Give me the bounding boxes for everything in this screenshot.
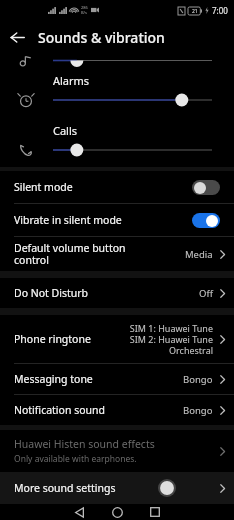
button[interactable]: More sound settings [0, 472, 234, 504]
staticText: Alarms [53, 73, 90, 88]
button[interactable]: Vibrate in silent mode [0, 204, 234, 236]
staticText: Off [199, 287, 213, 300]
button[interactable]: Silent mode [0, 171, 234, 203]
staticText: Silent mode [14, 180, 192, 194]
staticText: Default volume button control [14, 241, 185, 267]
staticText: Notification sound [14, 403, 183, 417]
button[interactable]: Default volume button control [0, 237, 234, 271]
button[interactable]: Phone ringtone [0, 315, 234, 363]
staticText: Huawei Histen sound effects [14, 437, 155, 451]
staticText: 21 [192, 8, 198, 15]
button[interactable]: Huawei Histen sound effects [0, 430, 234, 472]
staticText: Calls [53, 123, 78, 138]
button[interactable]: Messaging tone [0, 364, 234, 394]
staticText: Bongo [183, 404, 213, 417]
button[interactable]: Notification sound [0, 395, 234, 425]
button[interactable]: Do Not Disturb [0, 278, 234, 308]
button[interactable]: Alarms [0, 67, 234, 117]
staticText: Phone ringtone [14, 332, 129, 346]
button[interactable]: Recents [136, 504, 174, 520]
button[interactable]: Home [98, 504, 136, 520]
staticText: More sound settings [14, 481, 116, 495]
button[interactable]: Back [60, 504, 98, 520]
button[interactable]: Back [0, 20, 34, 54]
staticText: Media [185, 248, 213, 261]
staticText: 7:00 [212, 5, 228, 16]
staticText: Only available with earphones. [14, 453, 137, 465]
staticText: 286 [81, 5, 88, 10]
staticText: Sounds & vibration [38, 28, 165, 47]
staticText: SIM 1: Huawei Tune SIM 2: Huawei Tune Or… [129, 322, 213, 356]
button[interactable]: Calls [0, 117, 234, 167]
staticText: Vibrate in silent mode [14, 213, 192, 227]
staticText: B/s [81, 10, 88, 15]
staticText: Do Not Disturb [14, 286, 199, 300]
staticText: Bongo [183, 373, 213, 386]
staticText: Messaging tone [14, 372, 183, 386]
